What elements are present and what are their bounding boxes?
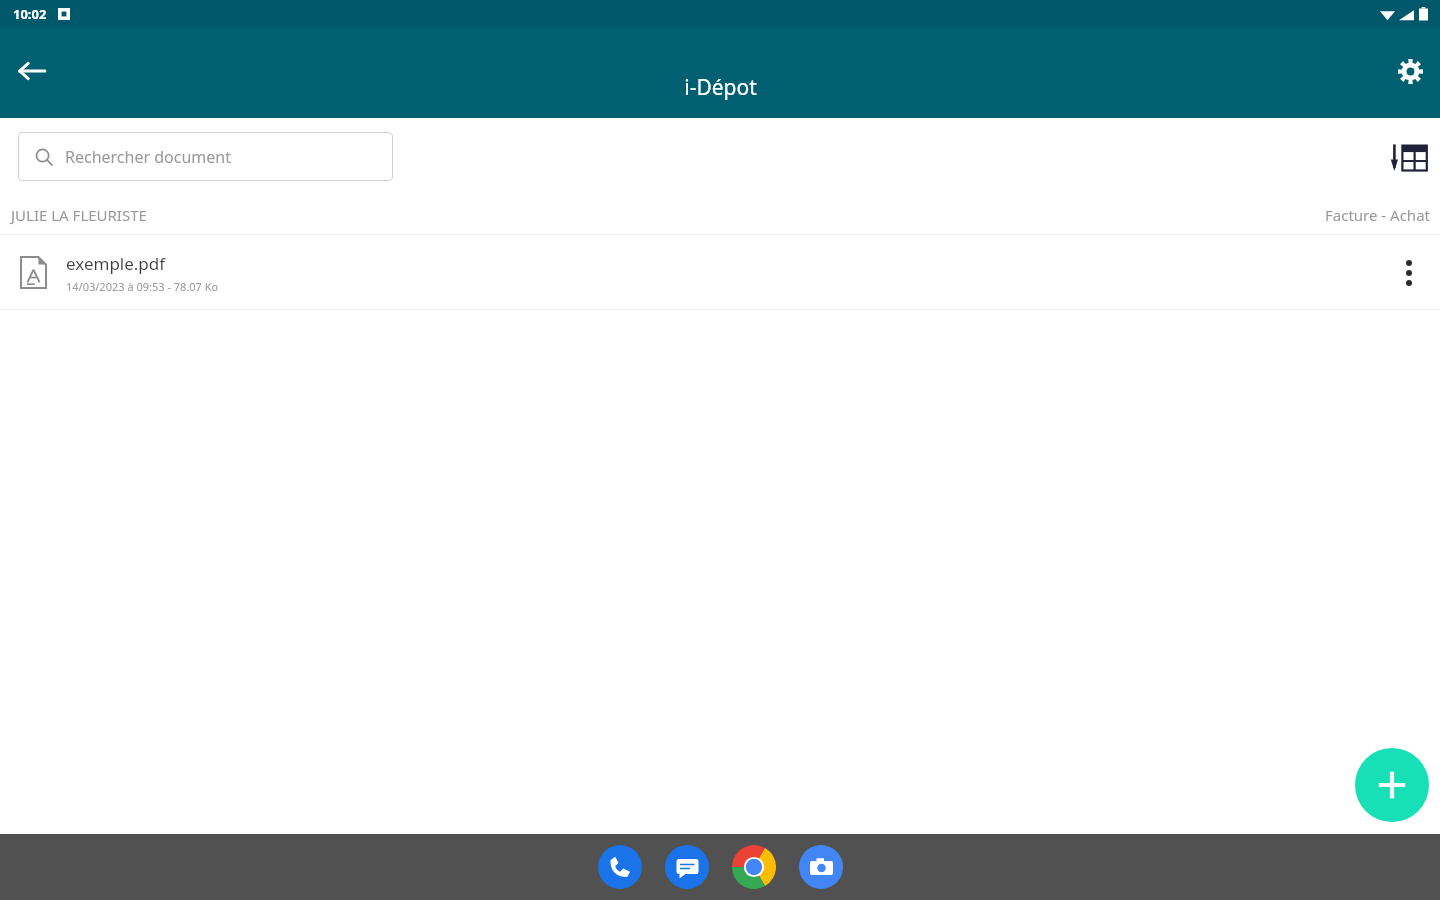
staticText: 10:02	[13, 5, 47, 23]
button[interactable]: Retour	[8, 47, 56, 95]
button[interactable]: Messages	[665, 845, 709, 889]
button[interactable]: Téléphone	[598, 845, 642, 889]
button[interactable]: Ajouter un document	[1355, 748, 1429, 822]
staticText: Facture - Achat	[1325, 205, 1430, 225]
staticText: Rechercher document	[65, 146, 231, 168]
button[interactable]: exemple.pdf	[0, 235, 1440, 310]
staticText: JULIE LA FLEURISTE	[11, 205, 147, 225]
staticText: exemple.pdf	[66, 252, 166, 275]
staticText: 14/03/2023 à 09:53 - 78.07 Ko	[66, 279, 219, 294]
button[interactable]: Chrome	[732, 845, 776, 889]
button[interactable]: Appareil photo	[799, 845, 843, 889]
button[interactable]: Rechercher document	[18, 132, 393, 181]
staticText: i-Dépot	[684, 73, 757, 102]
button[interactable]: Trier par date	[1382, 131, 1434, 183]
button[interactable]: Paramètres	[1386, 47, 1434, 95]
button[interactable]: Plus d'options	[1385, 249, 1433, 297]
